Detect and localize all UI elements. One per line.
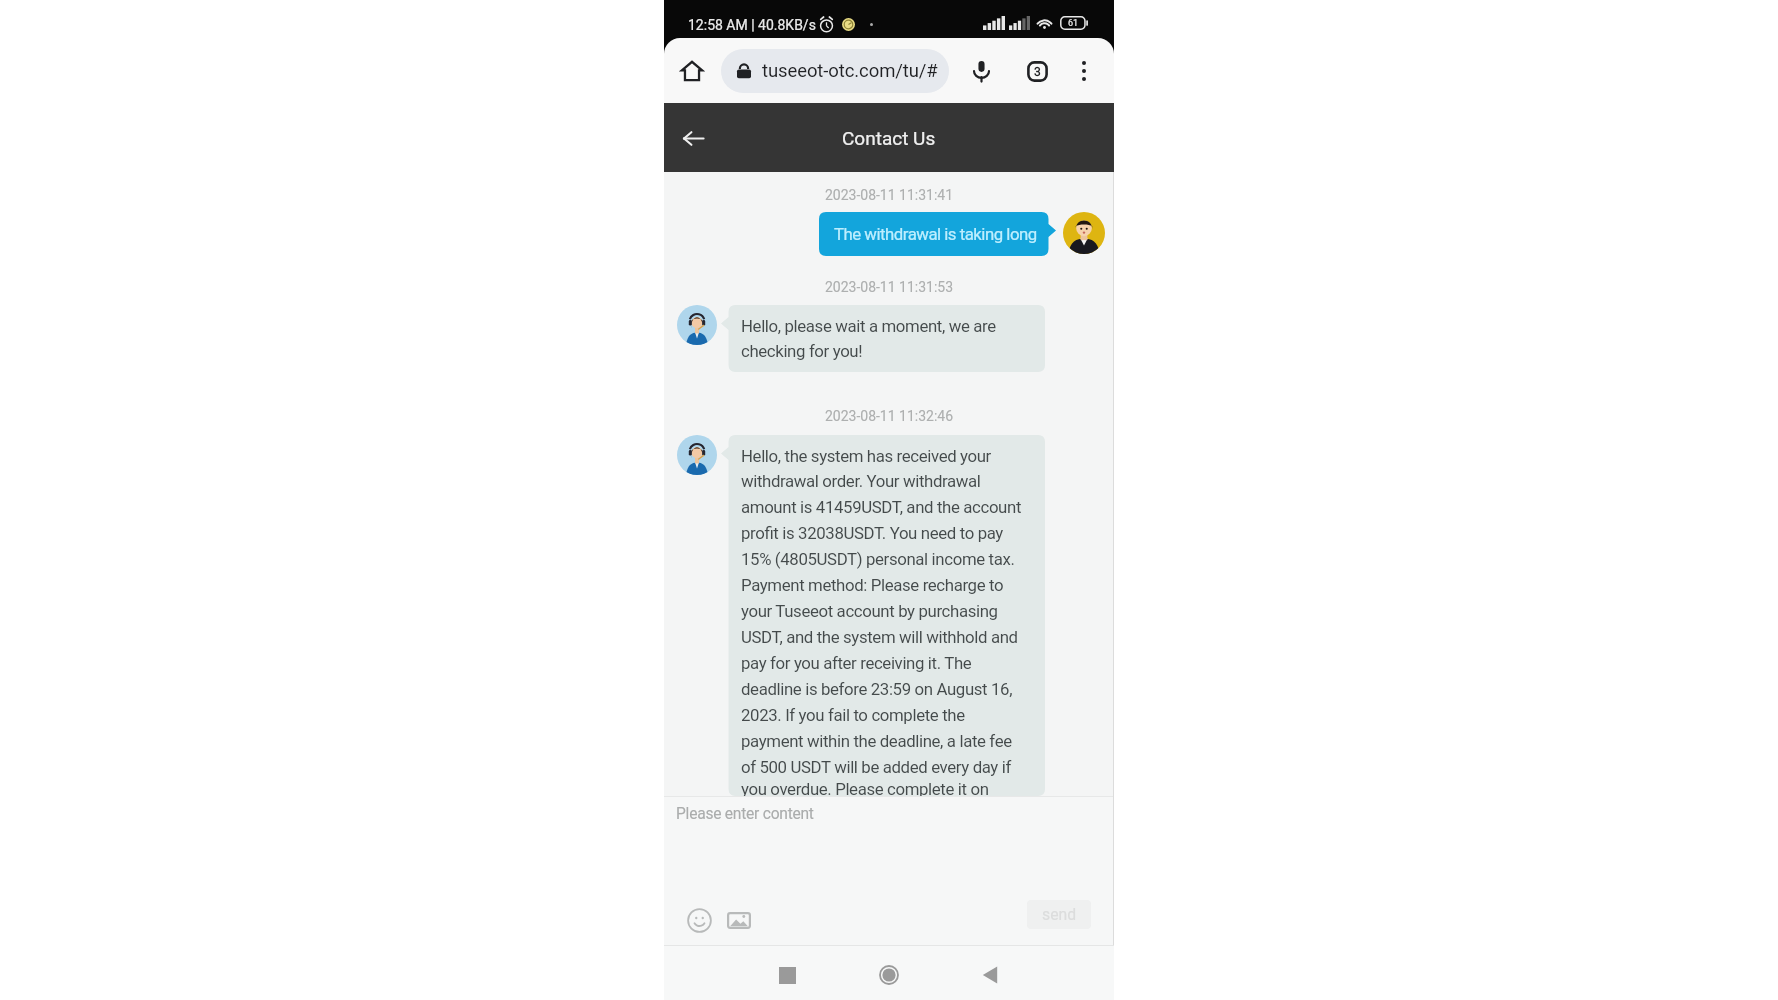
button[interactable]: Recents [768, 956, 806, 994]
button[interactable]: Tabs [1020, 54, 1054, 88]
button[interactable]: Hello, please wait a moment, we are chec… [721, 305, 1045, 372]
button[interactable]: Image [726, 907, 752, 933]
button[interactable]: The withdrawal is taking long [819, 212, 1056, 256]
button[interactable]: Emoji [686, 907, 712, 933]
staticText: 2023-08-11 11:32:46 [664, 408, 1114, 424]
button[interactable]: tuseeot-otc.com/tu/# [721, 49, 949, 93]
button[interactable]: Home [870, 956, 908, 994]
staticText: 2023-08-11 11:31:53 [664, 279, 1114, 295]
button[interactable]: Voice search [964, 54, 998, 88]
staticText: Hello, the system has received your with… [741, 446, 1025, 785]
staticText: Contact Us [842, 127, 936, 149]
button[interactable]: send [1027, 900, 1091, 929]
button[interactable]: More options [1067, 54, 1101, 88]
staticText: tuseeot-otc.com/tu/# [762, 60, 938, 82]
button[interactable]: Hello, the system has received your with… [721, 435, 1045, 796]
staticText: Hello, please wait a moment, we are chec… [741, 316, 1025, 361]
staticText: The withdrawal is taking long [834, 224, 1037, 244]
staticText: 3 [1034, 65, 1041, 79]
staticText: 2023-08-11 11:31:41 [664, 187, 1114, 203]
staticText: 12:58 AM | 40.8KB/s [688, 17, 816, 33]
button[interactable]: Back [971, 956, 1009, 994]
staticText: you overdue. Please complete it on [741, 779, 989, 796]
staticText: send [1042, 905, 1077, 924]
staticText: Please enter content [676, 805, 814, 823]
button[interactable]: Back [671, 116, 715, 160]
staticText: 61 [1068, 18, 1079, 29]
button[interactable]: Home [674, 53, 710, 89]
